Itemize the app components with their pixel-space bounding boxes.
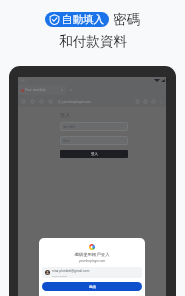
button[interactable]: Home bbox=[48, 99, 53, 104]
staticText: nina.plonkett@gmail.com bbox=[52, 269, 90, 273]
button[interactable]: Close tab bbox=[60, 88, 64, 92]
button[interactable]: 自動填入 bbox=[45, 12, 109, 27]
button[interactable]: Reload bbox=[39, 99, 44, 104]
button[interactable]: New tab bbox=[69, 88, 73, 92]
staticText: 登入 bbox=[60, 112, 71, 119]
staticText: 密碼 bbox=[113, 11, 141, 28]
button[interactable]: 密碼 bbox=[60, 136, 128, 145]
button[interactable]: Profile bbox=[143, 99, 148, 104]
button[interactable]: 登入 bbox=[60, 150, 128, 158]
button[interactable]: Extensions bbox=[151, 99, 156, 104]
staticText: Your 購物商城 bbox=[25, 88, 46, 92]
button[interactable]: Back bbox=[21, 99, 26, 104]
button[interactable]: nina.plonkett@gmail.com bbox=[42, 267, 142, 278]
button[interactable]: Bookmark bbox=[135, 99, 140, 104]
staticText: 繼續使用帳戶登入 bbox=[74, 252, 110, 258]
staticText: 繼續 bbox=[89, 285, 96, 289]
button[interactable]: 繼續 bbox=[42, 282, 142, 291]
button[interactable]: 電子郵件 bbox=[60, 122, 128, 131]
staticText: yourshoplogin.com bbox=[62, 100, 92, 104]
staticText: 和付款資料 bbox=[59, 33, 127, 50]
staticText: yourshoplogin.com bbox=[79, 259, 106, 263]
button[interactable]: Forward bbox=[30, 99, 35, 104]
staticText: 自動填入 bbox=[62, 13, 104, 26]
staticText: 9:41 bbox=[20, 79, 26, 83]
staticText: 密碼 bbox=[63, 139, 70, 143]
staticText: Nina Plonkett bbox=[52, 274, 68, 277]
staticText: 電子郵件 bbox=[63, 125, 76, 129]
staticText: 登入 bbox=[91, 152, 98, 156]
button[interactable]: Your 購物商城 bbox=[18, 85, 66, 95]
